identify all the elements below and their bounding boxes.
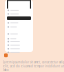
- button[interactable]: [7, 16, 31, 20]
- staticText: Lorem ipsum dolor sit amet, consectetur …: [3, 60, 64, 64]
- button[interactable]: App icon: [4, 53, 8, 57]
- staticText: elit, sed do eiusmod tempor incididunt u…: [3, 64, 64, 72]
